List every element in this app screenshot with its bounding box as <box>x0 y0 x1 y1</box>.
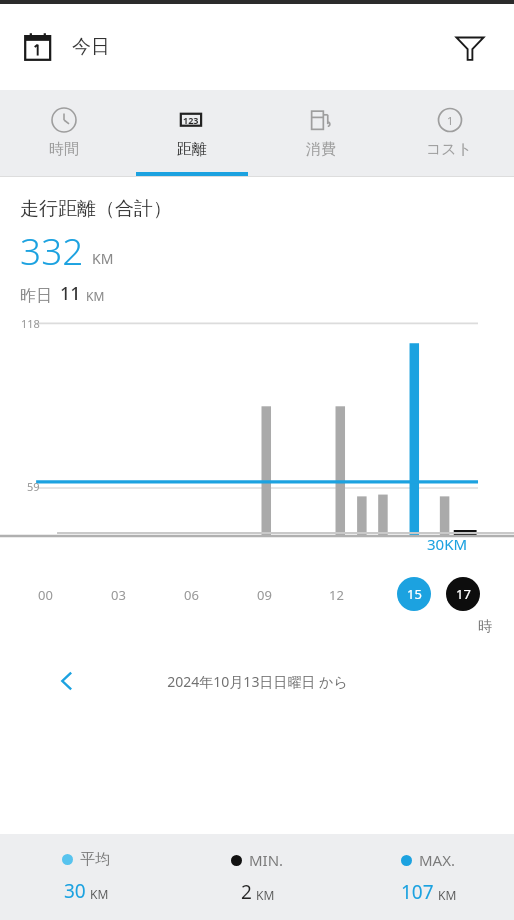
staticText: 昨日 <box>20 286 52 306</box>
staticText: 118 <box>21 316 40 331</box>
staticText: KM <box>438 887 457 903</box>
staticText: 今日 <box>72 35 110 59</box>
staticText: KM <box>256 887 275 903</box>
staticText: 平均 <box>80 850 110 869</box>
button[interactable]: 15 <box>397 577 431 611</box>
staticText: KM <box>90 886 109 902</box>
staticText: 06 <box>184 586 199 604</box>
button[interactable]: 消費 <box>256 90 385 176</box>
staticText: 15 <box>407 585 422 603</box>
staticText: 1 <box>447 113 454 128</box>
staticText: 走行距離（合計） <box>20 197 172 221</box>
staticText: 123 <box>183 114 199 126</box>
button[interactable]: 平均 <box>0 850 172 904</box>
button[interactable]: Filter <box>448 25 492 69</box>
staticText: 17 <box>456 585 471 603</box>
staticText: 12 <box>329 586 344 604</box>
button[interactable]: 今日 <box>14 23 118 71</box>
staticText: 時間 <box>49 140 79 159</box>
staticText: 11 <box>60 281 81 306</box>
staticText: 332 <box>20 225 84 275</box>
staticText: 2 <box>241 879 252 905</box>
staticText: 30 <box>64 878 86 904</box>
staticText: MIN. <box>249 850 284 870</box>
staticText: KM <box>92 249 114 268</box>
staticText: 時 <box>478 618 492 636</box>
staticText: KM <box>86 288 105 304</box>
button[interactable]: 17 <box>446 577 480 611</box>
staticText: 09 <box>257 586 272 604</box>
button[interactable]: 123 <box>128 90 256 176</box>
staticText: 03 <box>111 586 126 604</box>
button[interactable]: Previous <box>46 660 88 702</box>
staticText: 107 <box>401 879 434 905</box>
staticText: 59 <box>27 479 40 494</box>
button[interactable]: 1 <box>385 90 514 176</box>
button[interactable]: MAX. <box>343 850 514 905</box>
staticText: 消費 <box>306 140 336 159</box>
staticText: 00 <box>38 586 53 604</box>
staticText: 2024年10月13日日曜日 から <box>167 672 348 691</box>
staticText: MAX. <box>419 850 456 870</box>
staticText: 30KM <box>427 534 468 554</box>
staticText: 距離 <box>177 140 207 159</box>
button[interactable]: MIN. <box>172 850 343 905</box>
staticText: コスト <box>426 140 473 159</box>
button[interactable]: 時間 <box>0 90 128 176</box>
